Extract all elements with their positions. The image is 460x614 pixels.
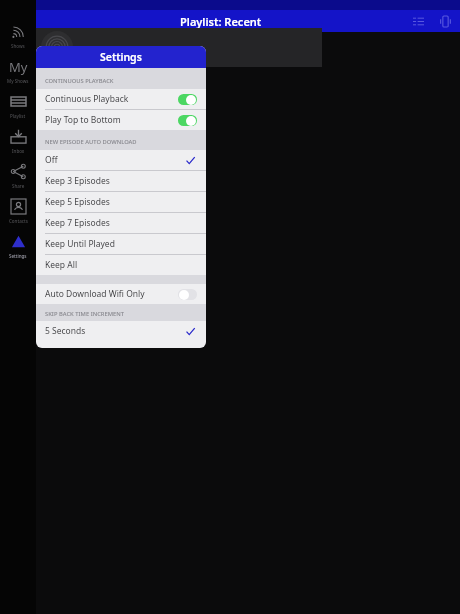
- staticText: CONTINUOUS PLAYBACK: [45, 77, 114, 85]
- staticText: Off: [45, 154, 58, 166]
- button[interactable]: Share: [0, 158, 36, 193]
- staticText: Inbox: [12, 148, 25, 154]
- staticText: NEW EPISODE AUTO DOWNLOAD: [45, 138, 137, 146]
- staticText: Keep Until Played: [45, 238, 115, 250]
- staticText: Settings: [100, 50, 142, 64]
- staticText: Shows: [11, 43, 25, 49]
- button[interactable]: Keep 7 Episodes: [36, 213, 206, 233]
- staticText: Playlist: [10, 113, 26, 119]
- button[interactable]: [36, 28, 322, 67]
- staticText: SKIP BACK TIME INCREMENT: [45, 310, 125, 318]
- button[interactable]: Off: [36, 150, 206, 170]
- button[interactable]: Contacts: [0, 193, 36, 228]
- staticText: My Shows: [7, 78, 29, 84]
- button[interactable]: Playlist: [0, 88, 36, 123]
- button[interactable]: Settings: [0, 228, 36, 263]
- staticText: My: [9, 58, 28, 76]
- button[interactable]: Keep 3 Episodes: [36, 171, 206, 191]
- button[interactable]: Shows: [0, 18, 36, 53]
- staticText: Keep 5 Episodes: [45, 196, 110, 208]
- button[interactable]: 5 Seconds: [36, 321, 206, 341]
- staticText: Keep All: [45, 259, 78, 271]
- button[interactable]: Continuous Playback: [36, 89, 206, 109]
- button[interactable]: [178, 289, 197, 300]
- button[interactable]: My: [0, 53, 36, 88]
- button[interactable]: Inbox: [0, 123, 36, 158]
- button[interactable]: Keep Until Played: [36, 234, 206, 254]
- button[interactable]: Auto Download Wifi Only: [36, 284, 206, 304]
- button[interactable]: Keep All: [36, 255, 206, 275]
- staticText: Continuous Playback: [45, 93, 129, 105]
- staticText: Keep 7 Episodes: [45, 217, 110, 229]
- staticText: 5 Seconds: [45, 325, 86, 337]
- button[interactable]: [178, 115, 197, 126]
- staticText: Playlist: Recent: [180, 14, 262, 29]
- button[interactable]: Play Top to Bottom: [36, 110, 206, 130]
- staticText: Share: [12, 183, 25, 189]
- button[interactable]: Now playing: [436, 10, 454, 32]
- staticText: Keep 3 Episodes: [45, 175, 110, 187]
- staticText: Auto Download Wifi Only: [45, 288, 145, 300]
- button[interactable]: [178, 94, 197, 105]
- staticText: Settings: [9, 253, 27, 259]
- staticText: Play Top to Bottom: [45, 114, 121, 126]
- staticText: Contacts: [9, 218, 28, 224]
- button[interactable]: Keep 5 Episodes: [36, 192, 206, 212]
- button[interactable]: Sort playlist: [406, 10, 430, 32]
